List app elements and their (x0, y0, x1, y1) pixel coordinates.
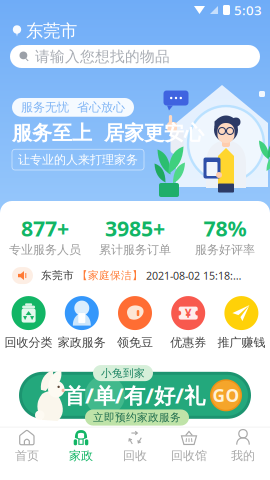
staticText: 2021-08-02 15:18:04 (143, 268, 242, 283)
staticText: 78% (203, 214, 246, 242)
staticText: 服务无忧 省心放心 (21, 100, 125, 115)
staticText: 累计服务订单 (99, 242, 171, 257)
button[interactable]: 回收馆 (162, 426, 216, 466)
staticText: 让专业的人来打理家务 (18, 152, 138, 167)
staticText: 回收分类 (5, 335, 53, 350)
button[interactable]: 家政 (54, 426, 108, 466)
button[interactable]: 请输入您想找的物品 (10, 45, 260, 68)
button[interactable]: 领免豆 (109, 296, 161, 350)
button[interactable]: 家政服务 (56, 296, 108, 350)
staticText: 877+ (21, 214, 69, 242)
staticText: 【家庭保洁】 (77, 269, 143, 282)
button[interactable]: 首页 (0, 426, 54, 466)
button[interactable]: 东莞市 (0, 20, 270, 42)
staticText: 服务好评率 (195, 242, 255, 257)
staticText: 东莞市 (41, 269, 77, 282)
staticText: 专业服务人员 (9, 242, 81, 257)
staticText: 领免豆 (117, 335, 153, 350)
staticText: ¥ (185, 305, 192, 321)
button[interactable]: 推广赚钱 (215, 296, 267, 350)
staticText: 家政服务 (58, 335, 106, 350)
staticText: 请输入您想找的物品 (35, 47, 170, 65)
staticText: 立即预约家政服务 (93, 411, 181, 424)
staticText: 服务至上 居家更安心 (12, 121, 204, 145)
staticText: 我的 (231, 448, 255, 463)
staticText: 回收馆 (171, 448, 207, 463)
staticText: 回收 (123, 448, 147, 463)
staticText: 5:03 (234, 1, 262, 19)
button[interactable]: 回收 (108, 426, 162, 466)
staticText: 首/单/有/好/礼 (64, 381, 205, 409)
button[interactable]: 小兔到家 (19, 372, 251, 419)
staticText: 小兔到家 (101, 366, 145, 380)
staticText: 3985+ (105, 214, 165, 242)
staticText: GO (212, 384, 239, 407)
staticText: 优惠券 (170, 335, 206, 350)
staticText: 东莞市 (26, 20, 77, 42)
staticText: 推广赚钱 (217, 335, 265, 350)
staticText: 家政 (69, 448, 93, 463)
button[interactable]: 我的 (216, 426, 270, 466)
button[interactable]: ¥ (162, 296, 214, 350)
button[interactable]: 回收分类 (3, 296, 55, 350)
staticText: 首页 (15, 448, 39, 463)
